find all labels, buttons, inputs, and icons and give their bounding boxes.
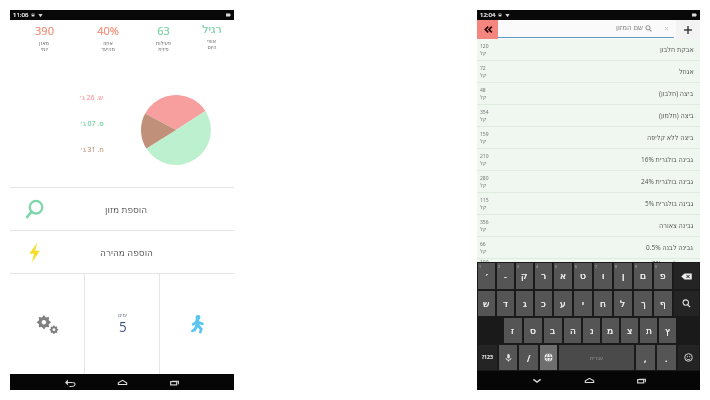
button[interactable]: , — [636, 345, 655, 370]
button[interactable]: ך — [634, 291, 652, 316]
button[interactable]: ר — [535, 263, 552, 289]
button[interactable]: ל — [614, 291, 632, 316]
staticText: 210 — [480, 153, 489, 160]
button[interactable]: 48 — [477, 83, 700, 104]
button[interactable]: Recents — [148, 374, 200, 390]
button[interactable]: Hide keyboard — [511, 371, 563, 390]
button[interactable]: רגיל — [189, 23, 234, 56]
staticText: ביצה (חלמון) — [659, 111, 694, 120]
staticText: 5 — [555, 264, 558, 269]
button[interactable]: 390 — [10, 23, 78, 56]
staticText: ו — [602, 271, 605, 281]
button[interactable]: צ — [621, 318, 638, 343]
button[interactable]: Settings — [10, 274, 84, 374]
button[interactable]: י — [574, 291, 592, 316]
button[interactable]: עברית — [559, 345, 634, 370]
button[interactable]: שם המזון — [498, 20, 676, 39]
button[interactable]: Backspace — [674, 263, 699, 289]
staticText: 0 — [655, 264, 658, 269]
button[interactable]: ם — [634, 263, 652, 289]
button[interactable]: Days — [85, 274, 159, 374]
button[interactable]: 280 — [477, 171, 700, 192]
staticText: פעילות — [156, 40, 171, 46]
button[interactable]: Recents — [615, 371, 667, 390]
staticText: מהיעד — [101, 46, 115, 52]
staticText: ביצה ללא קליפה — [647, 133, 694, 142]
staticText: 11:06 — [13, 11, 29, 19]
button[interactable]: 72 — [477, 61, 700, 82]
button[interactable]: . — [657, 345, 676, 370]
button[interactable]: Activity — [160, 274, 234, 374]
staticText: נ — [590, 326, 594, 336]
staticText: קל — [480, 182, 487, 188]
button[interactable]: ן — [614, 263, 632, 289]
staticText: י — [582, 299, 585, 309]
button[interactable]: 120 — [477, 39, 700, 60]
button[interactable]: ף — [654, 291, 672, 316]
button[interactable]: ב — [544, 318, 562, 343]
button[interactable]: Home — [96, 374, 148, 390]
button[interactable]: מ — [602, 318, 619, 343]
button[interactable]: Home — [563, 371, 615, 390]
button[interactable]: 356 — [477, 215, 700, 236]
button[interactable]: 210 — [477, 149, 700, 170]
staticText: קל — [480, 94, 487, 100]
staticText: מאזן — [39, 40, 49, 46]
staticText: 354 — [480, 109, 489, 116]
button[interactable]: ׳ — [478, 263, 495, 289]
button[interactable]: 115 — [477, 193, 700, 214]
button[interactable]: ?123 — [478, 345, 497, 370]
staticText: 48 — [480, 87, 486, 94]
button[interactable]: ט — [574, 263, 592, 289]
button[interactable]: Back — [477, 20, 498, 39]
button[interactable]: הוספה מהירה — [10, 231, 234, 273]
staticText: 100 — [480, 259, 489, 262]
button[interactable]: ת — [640, 318, 657, 343]
button[interactable]: Emoji — [678, 345, 699, 370]
button[interactable]: ד — [497, 291, 514, 316]
button[interactable]: 40% — [78, 23, 138, 56]
button[interactable]: ש — [478, 291, 495, 316]
button[interactable]: 354 — [477, 105, 700, 126]
staticText: אחוז — [103, 40, 113, 46]
staticText: כ — [541, 299, 546, 309]
staticText: רגיל — [202, 23, 222, 36]
button[interactable]: א — [554, 263, 572, 289]
button[interactable]: פ — [654, 263, 672, 289]
staticText: קל — [480, 248, 487, 254]
button[interactable]: 159 — [477, 127, 700, 148]
staticText: ך — [641, 299, 646, 309]
staticText: הוספת מזון — [105, 203, 148, 215]
button[interactable]: ק — [516, 263, 533, 289]
staticText: 5 — [119, 318, 127, 336]
button[interactable]: כ — [535, 291, 552, 316]
button[interactable]: ח — [594, 291, 612, 316]
button[interactable]: הוספת מזון — [10, 188, 234, 230]
button[interactable]: - — [497, 263, 514, 289]
staticText: היום — [207, 44, 217, 50]
button[interactable]: ס — [524, 318, 542, 343]
button[interactable]: Language — [540, 345, 557, 370]
button[interactable]: ז — [504, 318, 522, 343]
staticText: 159 — [480, 131, 489, 138]
button[interactable]: Add — [676, 20, 700, 39]
staticText: / — [527, 352, 531, 364]
staticText: פ. 07 ג׳ — [80, 119, 104, 129]
button[interactable]: / — [519, 345, 538, 370]
staticText: צ — [627, 326, 633, 336]
staticText: קל — [480, 204, 487, 210]
button[interactable]: Back — [44, 374, 96, 390]
button[interactable]: ה — [564, 318, 581, 343]
button[interactable]: Voice input — [499, 345, 517, 370]
button[interactable]: ג — [516, 291, 533, 316]
button[interactable]: נ — [583, 318, 600, 343]
button[interactable]: Search — [674, 291, 699, 316]
button[interactable]: ץ — [659, 318, 676, 343]
button[interactable]: ו — [594, 263, 612, 289]
button[interactable]: 63 — [138, 23, 189, 56]
staticText: ש — [483, 299, 490, 309]
button[interactable]: ע — [554, 291, 572, 316]
button[interactable]: 66 — [477, 237, 700, 258]
staticText: ח. 31 ג׳ — [80, 145, 104, 155]
button[interactable]: 100 — [477, 259, 700, 262]
